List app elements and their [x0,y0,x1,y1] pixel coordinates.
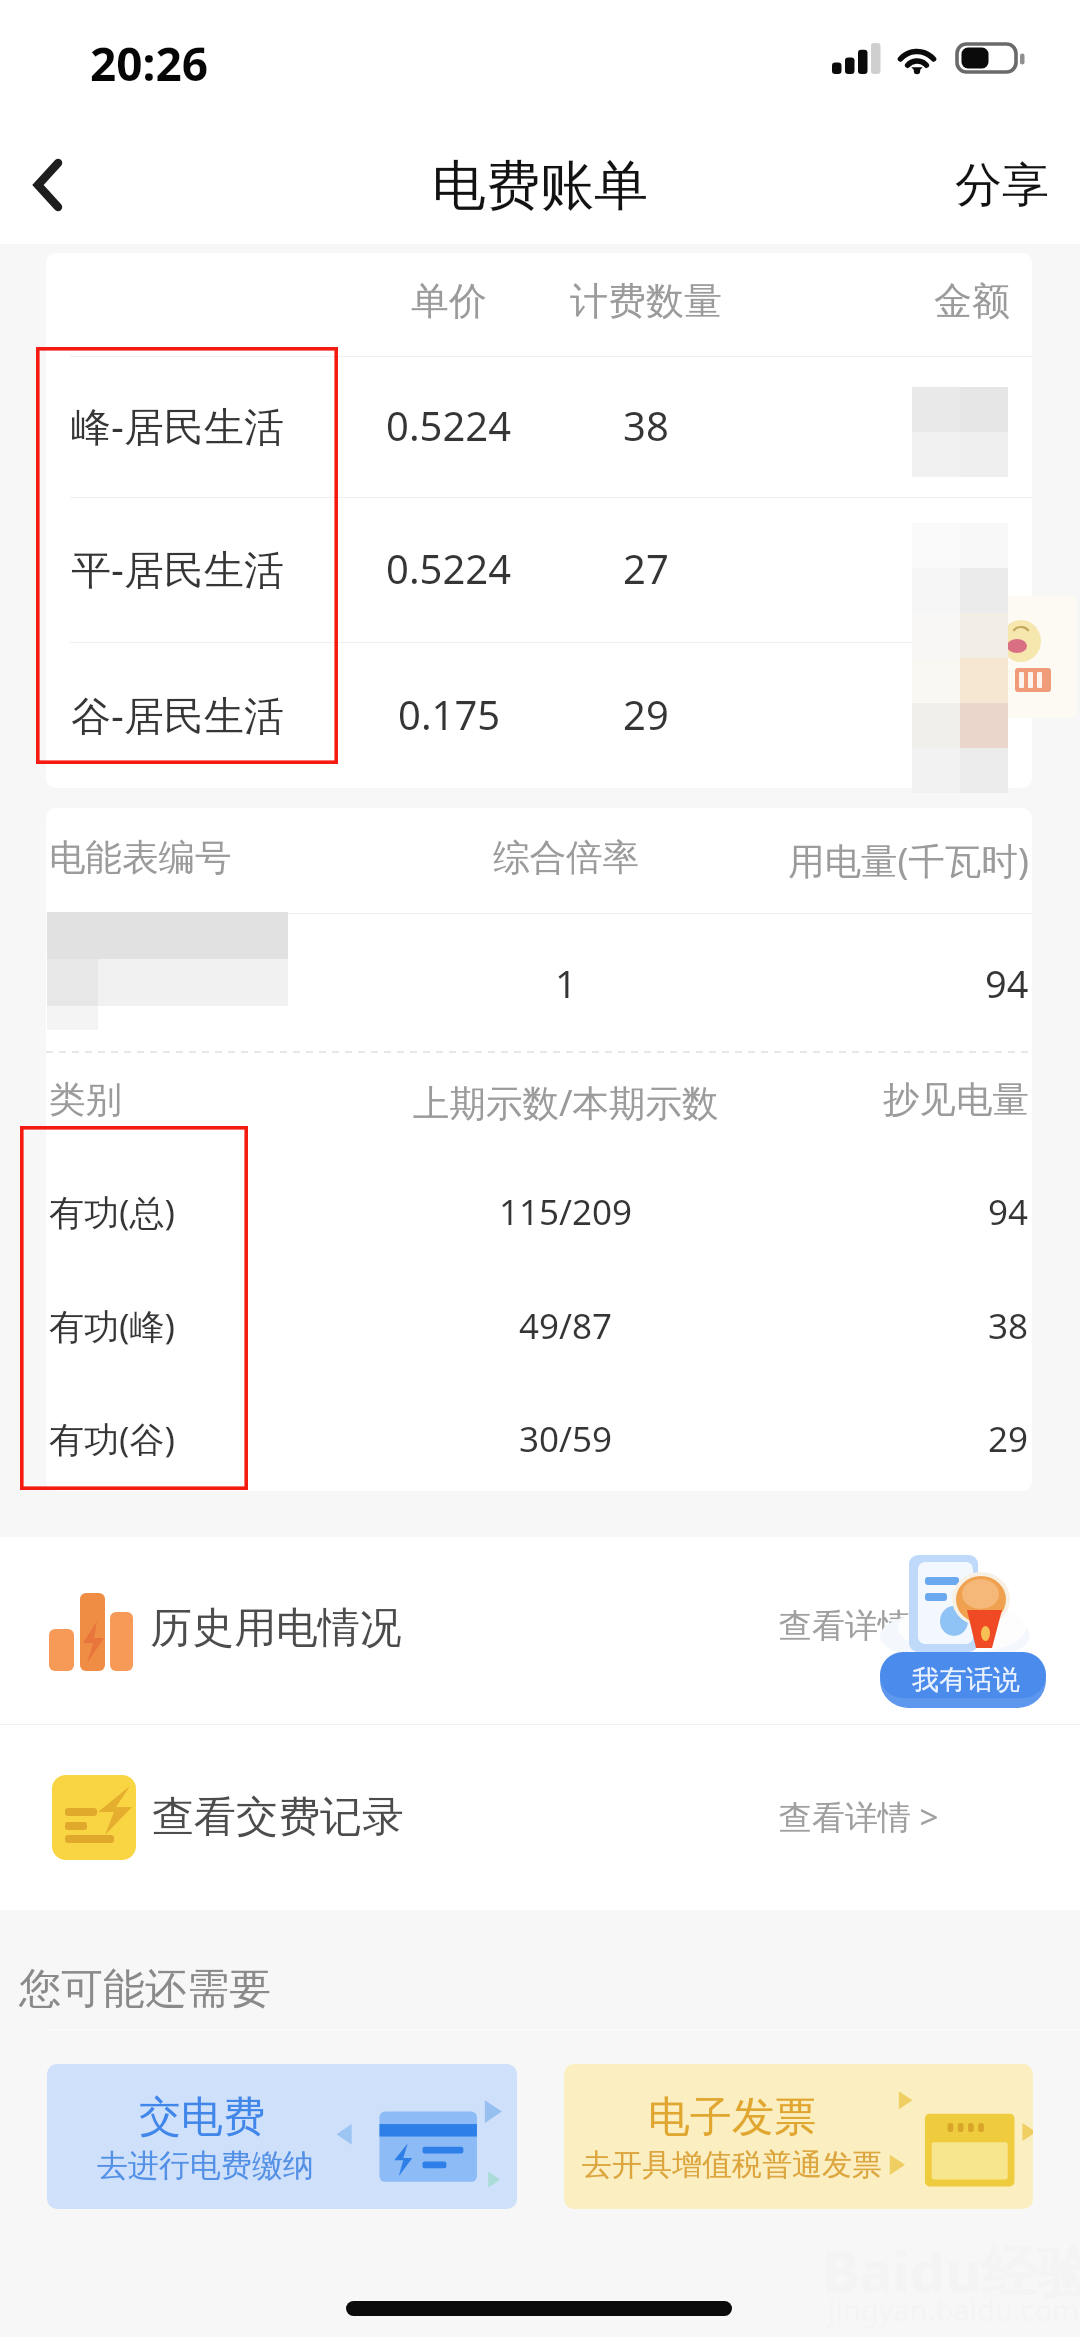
staticText: 94 [985,957,1029,1009]
staticText: 去进行电费缴纳 [97,2146,314,2185]
button[interactable]: 交电费 [47,2064,517,2209]
staticText: 0.5224 [386,541,512,595]
staticText: 20:26 [90,32,209,95]
staticText: 综合倍率 [493,835,639,881]
staticText: 查看交费记录 [152,1791,404,1844]
staticText: 38 [623,398,669,452]
staticText: 金额 [934,277,1010,325]
staticText: 我有话说 [912,1663,1020,1697]
staticText: 0.5224 [386,398,512,452]
staticText: 1 [555,957,577,1009]
staticText: 0.175 [398,687,501,741]
staticText: 计费数量 [570,277,722,325]
staticText: 单价 [411,277,487,325]
button[interactable]: Back [0,122,110,244]
staticText: 49/87 [519,1302,613,1350]
staticText: 29 [623,687,669,741]
button[interactable]: 分享 [920,120,1080,244]
button[interactable]: 电子发票 [564,2064,1033,2209]
staticText: 有功(峰) [49,1302,176,1350]
staticText: 查看详情 > [779,1794,939,1839]
staticText: 类别 [49,1077,122,1123]
staticText: 历史用电情况 [150,1602,402,1655]
staticText: 29 [988,1415,1029,1463]
staticText: 115/209 [499,1188,633,1236]
staticText: 电子发票 [648,2091,816,2144]
staticText: 谷-居民生活 [71,687,284,742]
staticText: 30/59 [519,1415,613,1463]
staticText: 有功(谷) [49,1415,176,1463]
staticText: 94 [988,1188,1029,1236]
staticText: 平-居民生活 [71,541,284,596]
staticText: 分享 [955,156,1049,215]
staticText: 有功(总) [49,1188,176,1236]
staticText: 交电费 [139,2091,265,2144]
staticText: 27 [623,541,669,595]
staticText: 上期示数/本期示数 [413,1077,719,1127]
staticText: 电能表编号 [49,835,232,881]
button[interactable]: 历史用电情况 [0,1537,1080,1724]
button[interactable]: Feedback [880,1548,1046,1710]
button[interactable]: 查看交费记录 [0,1725,1080,1913]
staticText: 用电量(千瓦时) [788,835,1029,885]
staticText: 峰-居民生活 [71,398,284,453]
staticText: 电费账单 [432,152,648,220]
staticText: 38 [988,1302,1029,1350]
staticText: 去开具增值税普通发票 [582,2146,882,2184]
staticText: 查看详情 [779,1605,911,1647]
staticText: 抄见电量 [883,1077,1029,1123]
staticText: 您可能还需要 [19,1963,271,2016]
